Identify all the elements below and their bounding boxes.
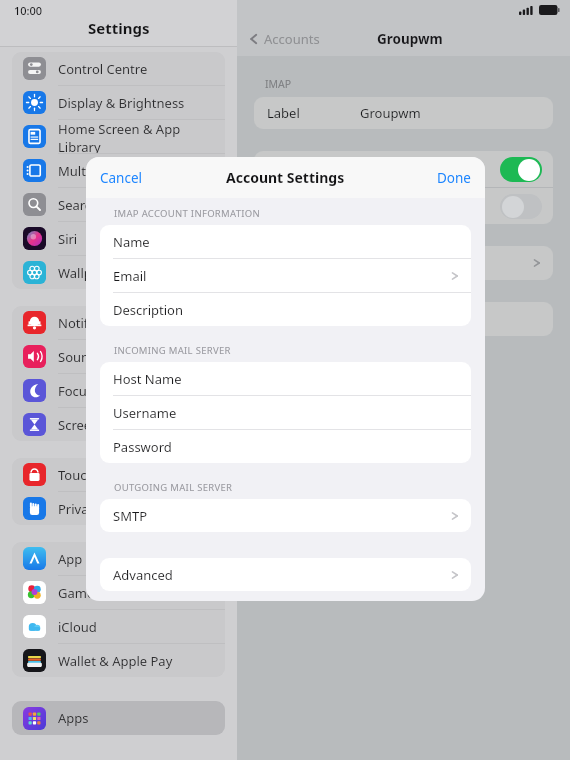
staticText: Label bbox=[267, 104, 300, 122]
staticText: Focus bbox=[58, 382, 94, 400]
staticText: Touch ID & Passcode bbox=[58, 466, 186, 484]
staticText: Account Settings bbox=[226, 168, 345, 187]
staticText: Multi bbox=[58, 162, 90, 180]
button[interactable]: Focus bbox=[12, 374, 225, 407]
staticText: 10:00 bbox=[14, 3, 43, 18]
button[interactable]: Toggle off bbox=[254, 188, 553, 224]
staticText: Display & Brightness bbox=[58, 94, 185, 112]
staticText: SMTP bbox=[113, 507, 148, 525]
button[interactable]: iCloud bbox=[12, 610, 225, 643]
button[interactable]: SMTP bbox=[100, 499, 471, 532]
staticText: Wallet & Apple Pay bbox=[58, 652, 173, 670]
button[interactable]: Display & Brightness bbox=[12, 86, 225, 119]
staticText: Username bbox=[113, 404, 177, 422]
staticText: Groupwm bbox=[360, 104, 421, 122]
staticText: App Store bbox=[58, 550, 118, 568]
other: Toggle off bbox=[500, 194, 542, 219]
staticText: Notifications bbox=[58, 314, 136, 332]
staticText: Search bbox=[58, 196, 100, 214]
staticText: Siri bbox=[58, 230, 78, 248]
button[interactable]: Touch ID & Passcode bbox=[12, 458, 225, 491]
staticText: Settings bbox=[88, 18, 150, 38]
button[interactable]: Password bbox=[100, 430, 471, 463]
staticText: Description bbox=[113, 301, 183, 319]
button[interactable]: Control Centre bbox=[12, 52, 225, 85]
button[interactable]: Toggle on bbox=[254, 151, 553, 187]
staticText: Cancel bbox=[100, 169, 143, 187]
button[interactable]: Apps bbox=[12, 701, 225, 735]
button[interactable]: Name bbox=[100, 225, 471, 258]
staticText: Apps bbox=[58, 709, 89, 727]
button[interactable]: Wallet & Apple Pay bbox=[12, 644, 225, 677]
other: Toggle on bbox=[500, 157, 542, 182]
button[interactable]: Label bbox=[254, 97, 553, 129]
button[interactable]: Description bbox=[100, 293, 471, 326]
button[interactable]: Privacy & Security bbox=[12, 492, 225, 525]
button[interactable]: Wallpaper bbox=[12, 256, 225, 289]
button[interactable] bbox=[254, 302, 553, 336]
button[interactable]: Multi bbox=[12, 154, 225, 187]
staticText: Advanced bbox=[113, 566, 173, 584]
button[interactable]: Host Name bbox=[100, 362, 471, 395]
button[interactable]: Accounts bbox=[247, 30, 320, 48]
staticText: IMAP bbox=[265, 77, 292, 91]
button[interactable]: Advanced bbox=[100, 558, 471, 591]
staticText: Host Name bbox=[113, 370, 182, 388]
button[interactable]: Email bbox=[100, 259, 471, 292]
button[interactable]: Game Center bbox=[12, 576, 225, 609]
staticText: Groupwm bbox=[377, 30, 443, 48]
staticText: Home Screen & App Library bbox=[58, 120, 225, 153]
staticText: OUTGOING MAIL SERVER bbox=[114, 481, 233, 494]
button[interactable]: Notifications bbox=[12, 306, 225, 339]
button[interactable]: App Store bbox=[12, 542, 225, 575]
staticText: Email bbox=[113, 267, 147, 285]
staticText: IMAP ACCOUNT INFORMATION bbox=[114, 207, 261, 220]
staticText: iCloud bbox=[58, 618, 97, 636]
staticText: Screen Time bbox=[58, 416, 133, 434]
staticText: Sounds bbox=[58, 348, 104, 366]
staticText: Done bbox=[437, 169, 471, 187]
staticText: Privacy & Security bbox=[58, 500, 167, 518]
button[interactable]: Done bbox=[427, 163, 485, 193]
button[interactable]: Username bbox=[100, 396, 471, 429]
button[interactable]: Sounds bbox=[12, 340, 225, 373]
button[interactable] bbox=[254, 246, 553, 280]
staticText: Game Center bbox=[58, 584, 139, 602]
button[interactable]: Siri bbox=[12, 222, 225, 255]
button[interactable]: Home Screen & App Library bbox=[12, 120, 225, 153]
staticText: Control Centre bbox=[58, 60, 148, 78]
staticText: INCOMING MAIL SERVER bbox=[114, 344, 231, 357]
staticText: Wallpaper bbox=[58, 264, 120, 282]
staticText: Password bbox=[113, 438, 172, 456]
button[interactable]: Cancel bbox=[86, 163, 153, 193]
button[interactable]: Screen Time bbox=[12, 408, 225, 441]
button[interactable]: Search bbox=[12, 188, 225, 221]
staticText: Name bbox=[113, 233, 150, 251]
staticText: Accounts bbox=[264, 30, 320, 48]
